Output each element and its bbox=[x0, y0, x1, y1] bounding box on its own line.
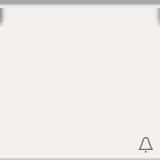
button[interactable]: Notifications bbox=[138, 135, 153, 151]
